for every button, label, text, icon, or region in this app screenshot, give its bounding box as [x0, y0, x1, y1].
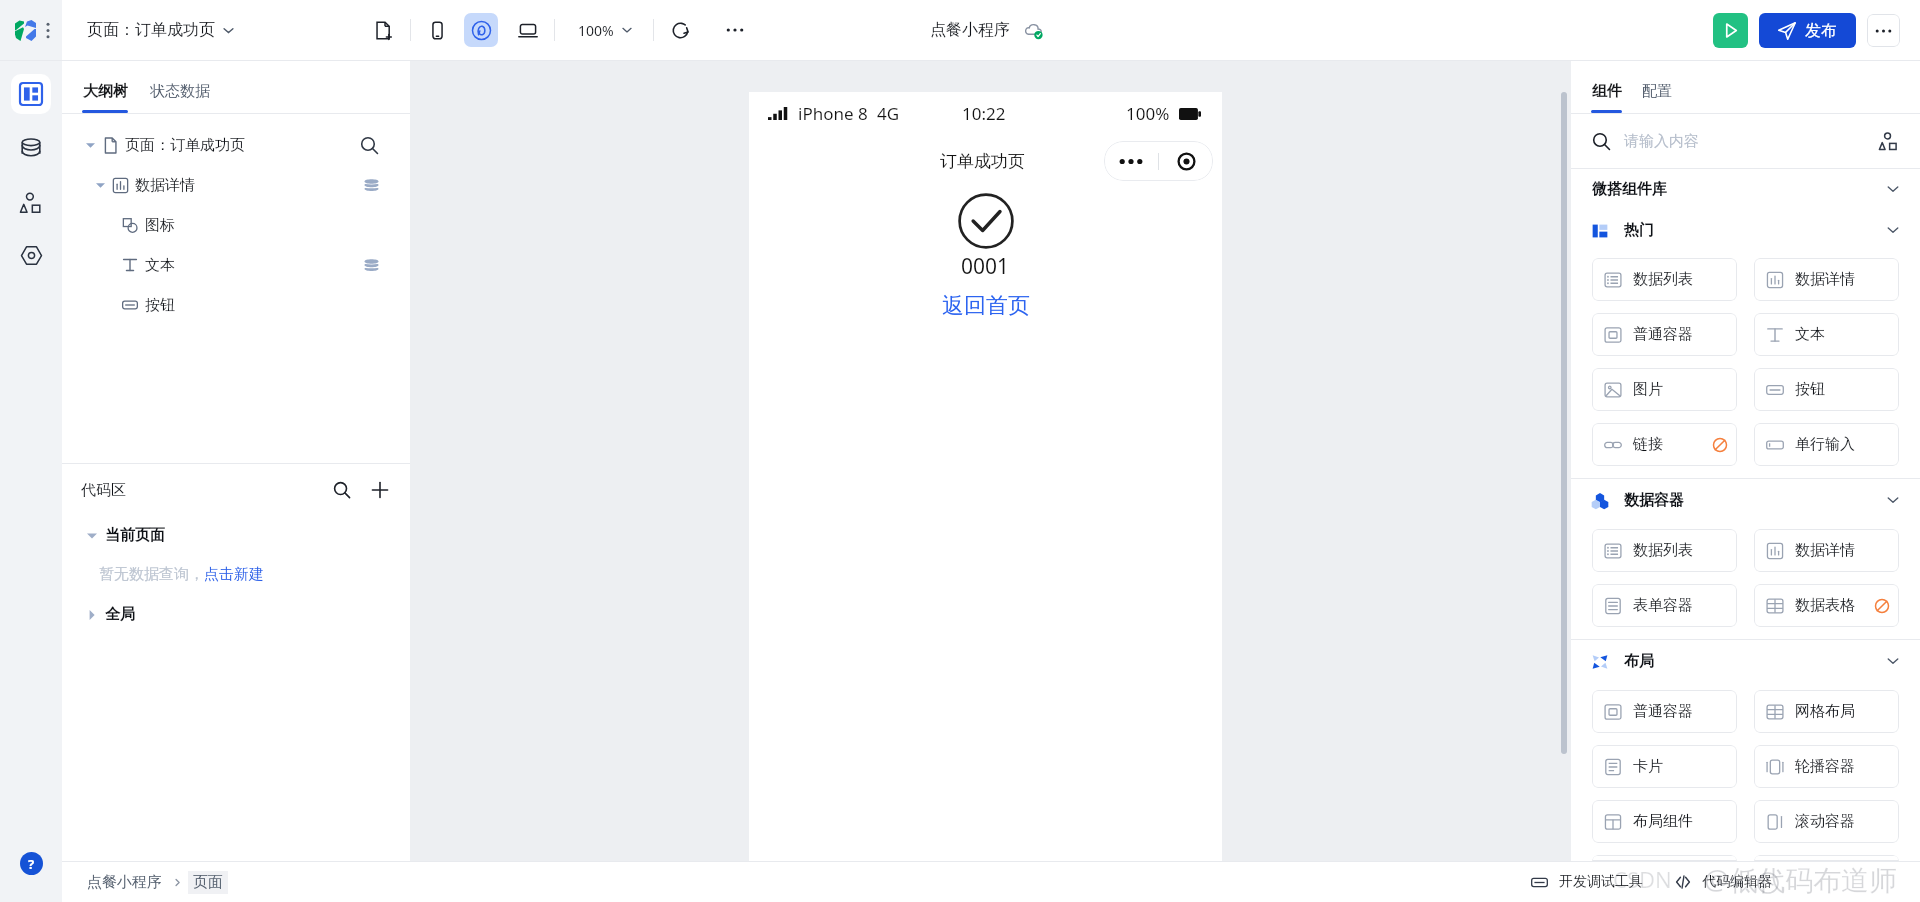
- staticText: 页面：订单成功页: [125, 136, 245, 155]
- button[interactable]: 页面: [188, 871, 228, 894]
- staticText: 单行输入: [1795, 435, 1855, 454]
- button[interactable]: 布局: [1571, 640, 1920, 682]
- staticText: 文本: [145, 256, 175, 275]
- staticText: 全局: [105, 605, 135, 624]
- button[interactable]: 数据列表: [1592, 258, 1737, 301]
- button[interactable]: Run preview: [1713, 13, 1748, 48]
- button[interactable]: Close mini program: [1159, 141, 1213, 181]
- button[interactable]: 配置: [1637, 82, 1677, 113]
- button[interactable]: More actions: [1867, 14, 1900, 47]
- button[interactable]: 页面：订单成功页: [62, 125, 410, 165]
- button[interactable]: 文本: [62, 245, 410, 285]
- button[interactable]: 100%: [573, 15, 638, 45]
- button[interactable]: 代码编辑器: [1670, 869, 1777, 895]
- button[interactable]: Pages panel: [11, 74, 51, 114]
- staticText: 配置: [1642, 82, 1672, 101]
- staticText: 状态数据: [150, 82, 210, 101]
- button[interactable]: 点击新建: [204, 565, 264, 584]
- button[interactable]: More: [1104, 141, 1158, 181]
- button[interactable]: Components: [11, 183, 51, 223]
- button[interactable]: Data models: [11, 128, 51, 168]
- button[interactable]: 大纲树: [77, 82, 133, 113]
- staticText: 按钮: [1795, 380, 1825, 399]
- staticText: 页面：订单成功页: [87, 20, 215, 40]
- staticText: 普通容器: [1633, 702, 1693, 721]
- staticText: 图片: [1633, 380, 1663, 399]
- button[interactable]: Search code: [328, 476, 356, 504]
- button[interactable]: 组件: [1586, 82, 1627, 113]
- staticText: 网格布局: [1795, 702, 1855, 721]
- button[interactable]: 发布: [1759, 13, 1856, 48]
- button[interactable]: 点餐小程序: [926, 16, 1047, 44]
- staticText: 数据容器: [1624, 491, 1684, 510]
- button[interactable]: 布局组件: [1592, 800, 1737, 843]
- button[interactable]: 按钮: [62, 285, 410, 325]
- button[interactable]: 热门: [1571, 209, 1920, 251]
- staticText: 代码区: [81, 481, 126, 500]
- button[interactable]: 页面：订单成功页: [81, 14, 241, 46]
- button[interactable]: 文本: [1754, 313, 1899, 356]
- button[interactable]: Menu: [38, 20, 58, 40]
- button[interactable]: 轮播容器: [1754, 745, 1899, 788]
- staticText: 数据详情: [1795, 541, 1855, 560]
- button[interactable]: Settings: [11, 235, 51, 275]
- button[interactable]: 表单容器: [1592, 584, 1737, 627]
- button[interactable]: 数据详情: [1754, 258, 1899, 301]
- button[interactable]: [1754, 855, 1899, 861]
- staticText: 布局组件: [1633, 812, 1693, 831]
- button[interactable]: 返回首页: [942, 292, 1030, 320]
- button[interactable]: 全局: [62, 594, 410, 635]
- button[interactable]: 当前页面: [62, 516, 410, 555]
- button[interactable]: New code block: [366, 476, 394, 504]
- button[interactable]: My components: [1874, 127, 1902, 155]
- button[interactable]: Desktop preview: [513, 15, 543, 45]
- button[interactable]: [1592, 855, 1737, 861]
- button[interactable]: New page: [368, 15, 398, 45]
- button[interactable]: 开发调试工具: [1526, 869, 1648, 895]
- button[interactable]: 图片: [1592, 368, 1737, 411]
- button[interactable]: 普通容器: [1592, 313, 1737, 356]
- button[interactable]: 普通容器: [1592, 690, 1737, 733]
- button[interactable]: Help: [20, 852, 43, 875]
- button[interactable]: 状态数据: [145, 82, 215, 113]
- staticText: 滚动容器: [1795, 812, 1855, 831]
- staticText: 数据详情: [1795, 270, 1855, 289]
- button[interactable]: More options: [721, 16, 749, 44]
- button[interactable]: 数据表格: [1754, 584, 1899, 627]
- staticText: ?: [28, 855, 35, 873]
- staticText: CSDN: [1613, 864, 1672, 894]
- button[interactable]: Search outline: [358, 134, 380, 156]
- staticText: 热门: [1624, 221, 1654, 240]
- button[interactable]: 网格布局: [1754, 690, 1899, 733]
- staticText: 暂无数据查询，: [99, 565, 204, 584]
- button[interactable]: 微搭组件库: [1571, 169, 1920, 209]
- staticText: 数据列表: [1633, 541, 1693, 560]
- button[interactable]: 数据容器: [1571, 479, 1920, 521]
- staticText: 数据详情: [135, 176, 195, 195]
- button[interactable]: 卡片: [1592, 745, 1737, 788]
- staticText: iPhone 8: [798, 102, 868, 125]
- button[interactable]: 按钮: [1754, 368, 1899, 411]
- staticText: 微搭组件库: [1592, 180, 1667, 199]
- button[interactable]: 图标: [62, 205, 410, 245]
- button[interactable]: 滚动容器: [1754, 800, 1899, 843]
- staticText: 按钮: [145, 296, 175, 315]
- staticText: 点餐小程序: [87, 873, 162, 892]
- button[interactable]: 数据详情: [62, 165, 410, 205]
- staticText: 4G: [877, 102, 900, 125]
- staticText: 表单容器: [1633, 596, 1693, 615]
- button[interactable]: 链接: [1592, 423, 1737, 466]
- button[interactable]: Mini program preview: [464, 13, 498, 47]
- staticText: 数据列表: [1633, 270, 1693, 289]
- button[interactable]: Phone preview: [422, 15, 452, 45]
- button[interactable]: 单行输入: [1754, 423, 1899, 466]
- button[interactable]: Refresh: [665, 15, 695, 45]
- staticText: 返回首页: [942, 292, 1030, 320]
- button[interactable]: App logo: [8, 13, 42, 47]
- button[interactable]: 数据详情: [1754, 529, 1899, 572]
- button[interactable]: 数据列表: [1592, 529, 1737, 572]
- staticText: 开发调试工具: [1559, 873, 1643, 891]
- staticText: 100%: [578, 21, 614, 40]
- button[interactable]: 点餐小程序: [87, 873, 162, 892]
- staticText: 点击新建: [204, 565, 264, 584]
